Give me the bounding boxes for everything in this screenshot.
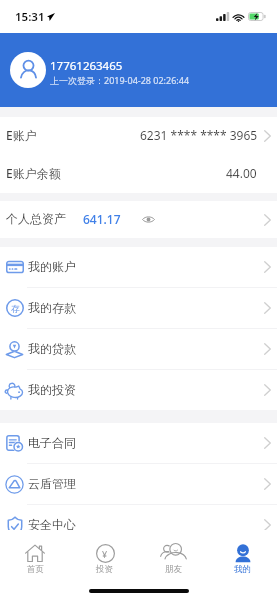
button[interactable]: 电子合同	[0, 423, 277, 463]
button[interactable]: 我的账户	[0, 247, 277, 287]
staticText: 首页	[27, 564, 44, 575]
button[interactable]: 我的	[208, 530, 277, 580]
staticText: 我的投资	[28, 382, 76, 397]
button[interactable]: E账户余额	[0, 155, 277, 193]
staticText: 电子合同	[28, 435, 76, 450]
staticText: 15:31	[15, 9, 45, 25]
other: 我的投资	[5, 381, 24, 399]
staticText: 641.17	[83, 211, 121, 227]
staticText: 44.00	[226, 165, 257, 181]
button[interactable]: E账户	[0, 117, 277, 155]
staticText: 存	[11, 303, 20, 314]
staticText: 个人总资产	[6, 211, 66, 226]
staticText: 6231 **** **** 3965	[140, 127, 258, 143]
other: 我的贷款	[6, 341, 23, 358]
other: 云盾管理	[5, 474, 24, 495]
button[interactable]: 首页	[0, 530, 70, 580]
button[interactable]: 个人总资产	[0, 201, 277, 238]
other: 电子合同	[6, 435, 23, 451]
other: 显示金额	[142, 215, 155, 224]
staticText: 17761263465	[50, 58, 123, 74]
staticText: E账户余额	[6, 165, 61, 181]
staticText: 上一次登录：2019-04-28 02:26:44	[50, 74, 190, 86]
button[interactable]: 我的投资	[0, 370, 277, 410]
button[interactable]: 云盾管理	[0, 464, 277, 504]
button[interactable]: 安全中心	[0, 505, 277, 545]
staticText: ¥	[102, 548, 108, 560]
other: 安全中心	[7, 516, 23, 535]
button[interactable]: ¥	[70, 530, 139, 580]
staticText: 我的存款	[28, 300, 76, 315]
staticText: 我的账户	[28, 259, 76, 274]
button[interactable]: 朋友	[139, 530, 208, 580]
staticText: 云盾管理	[28, 476, 76, 491]
other: 我的账户	[6, 260, 24, 274]
other: 我的存款	[6, 299, 24, 317]
staticText: 朋友	[165, 564, 182, 575]
staticText: 我的贷款	[28, 341, 76, 356]
staticText: 我的	[234, 564, 251, 575]
staticText: E账户	[6, 127, 37, 143]
button[interactable]: 我的存款	[0, 288, 277, 328]
staticText: 投资	[96, 564, 113, 575]
button[interactable]: 我的贷款	[0, 329, 277, 369]
staticText: 安全中心	[28, 517, 76, 532]
